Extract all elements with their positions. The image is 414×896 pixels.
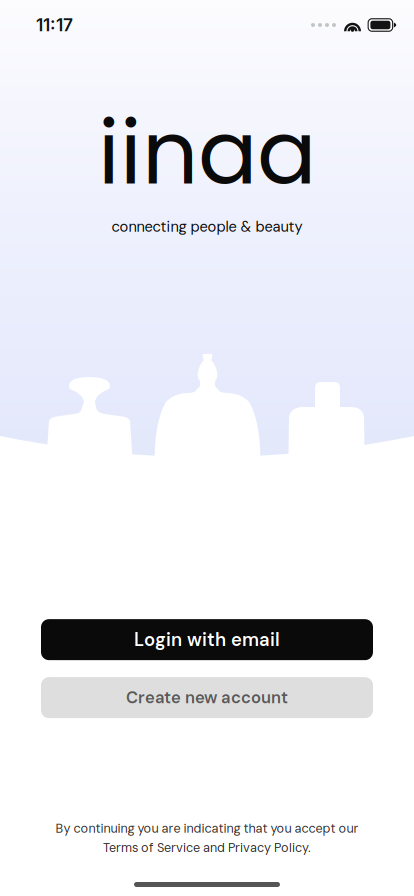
button[interactable]: Login with email — [41, 619, 373, 660]
button[interactable]: Create new account — [41, 677, 373, 718]
staticText: connecting people & beauty — [111, 217, 302, 236]
staticText: By continuing you are indicating that yo… — [55, 820, 358, 837]
staticText: 11:17 — [36, 14, 73, 35]
staticText: iinaa — [98, 91, 316, 214]
staticText: Login with email — [134, 628, 280, 652]
staticText: Terms of Service and Privacy Policy. — [103, 840, 311, 856]
staticText: Create new account — [126, 687, 288, 708]
